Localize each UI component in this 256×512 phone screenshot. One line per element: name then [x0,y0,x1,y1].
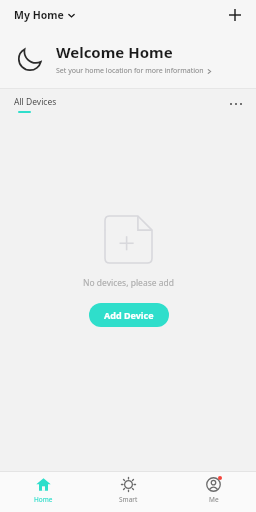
staticText: Welcome Home [56,42,173,62]
button[interactable]: Me [171,472,256,512]
staticText: Smart [119,495,138,504]
button[interactable]: Add [222,2,248,28]
staticText: Me [209,495,219,504]
staticText: No devices, please add [83,277,174,289]
button[interactable]: More options [224,92,248,116]
staticText: All Devices [14,96,57,108]
button[interactable]: Welcome Home [0,30,256,88]
button[interactable]: All Devices [14,96,57,113]
staticText: Set your home location for more informat… [56,66,204,76]
button[interactable]: My Home [12,4,77,26]
staticText: My Home [14,8,64,22]
button[interactable]: Smart [86,472,171,512]
staticText: Home [34,495,53,504]
button[interactable]: Add Device [89,303,169,327]
staticText: Add Device [104,309,154,321]
button[interactable]: Home [0,472,86,512]
